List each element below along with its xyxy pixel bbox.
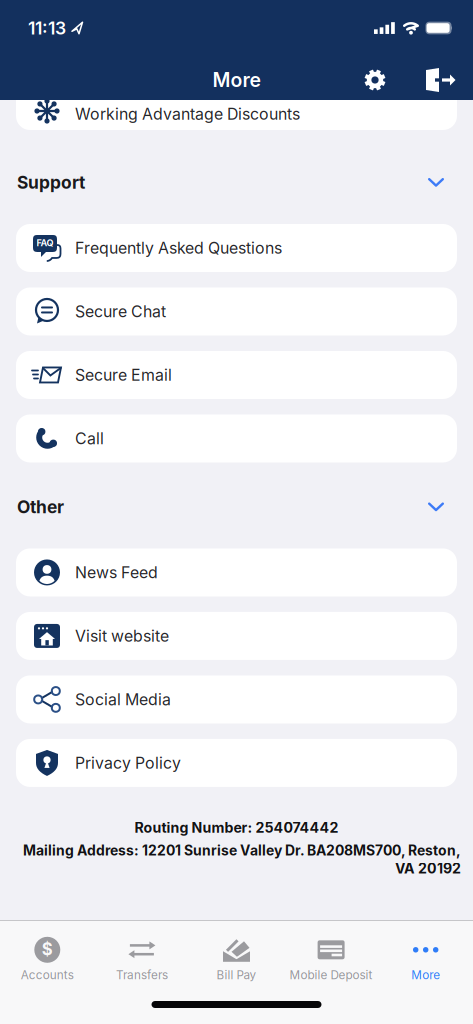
staticText: Call — [75, 429, 104, 448]
staticText: Social Media — [75, 690, 171, 709]
staticText: Mobile Deposit — [290, 968, 373, 982]
button[interactable]: Bill Pay — [189, 937, 284, 982]
staticText: Routing Number: 254074442 — [134, 819, 338, 836]
staticText: $ — [42, 939, 53, 959]
staticText: Mailing Address: 12201 Sunrise Valley Dr… — [23, 842, 461, 859]
staticText: VA 20192 — [395, 860, 461, 877]
staticText: Visit website — [75, 626, 169, 645]
button[interactable]: Visit website — [16, 612, 457, 660]
staticText: 11:13 — [28, 17, 66, 39]
staticText: More — [212, 68, 260, 92]
button[interactable]: News Feed — [16, 548, 457, 596]
button[interactable]: Settings — [351, 60, 399, 100]
button[interactable]: FAQ — [16, 224, 457, 272]
staticText: Secure Chat — [75, 302, 166, 321]
staticText: FAQ — [36, 237, 53, 248]
button[interactable]: Log out — [415, 60, 467, 100]
button[interactable]: Transfers — [95, 937, 189, 982]
button[interactable]: Social Media — [16, 675, 457, 723]
staticText: Secure Email — [75, 365, 172, 385]
button[interactable]: Collapse Other — [420, 502, 452, 511]
staticText: Frequently Asked Questions — [75, 238, 282, 258]
staticText: Support — [17, 172, 85, 193]
staticText: Accounts — [21, 968, 74, 982]
staticText: Other — [17, 496, 64, 517]
button[interactable]: Working Advantage Discounts — [16, 100, 457, 130]
staticText: Working Advantage Discounts — [75, 104, 300, 124]
staticText: More — [411, 968, 440, 982]
staticText: News Feed — [75, 563, 158, 582]
button[interactable]: Mobile Deposit — [284, 937, 378, 982]
button[interactable]: Secure Chat — [16, 287, 457, 335]
button[interactable]: More — [378, 937, 473, 982]
button[interactable]: Secure Email — [16, 351, 457, 399]
button[interactable]: Privacy Policy — [16, 739, 457, 787]
button[interactable]: Collapse Support — [420, 178, 452, 187]
staticText: Transfers — [116, 968, 168, 982]
button[interactable]: $ — [0, 937, 95, 982]
button[interactable]: Call — [16, 414, 457, 462]
staticText: Privacy Policy — [75, 753, 181, 772]
staticText: Bill Pay — [216, 968, 256, 982]
